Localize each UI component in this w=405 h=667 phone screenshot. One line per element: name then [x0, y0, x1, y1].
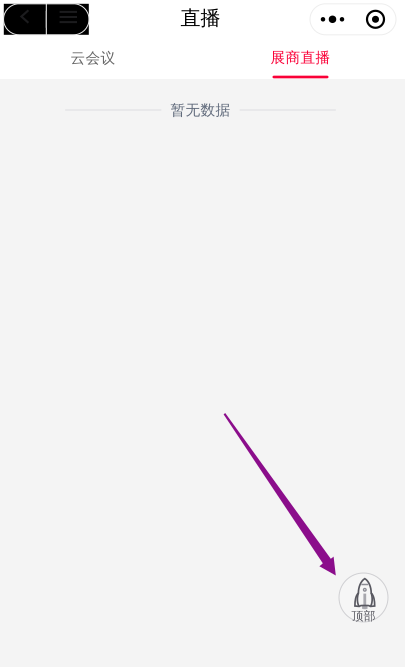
- button[interactable]: 回到顶部: [339, 573, 388, 622]
- staticText: 直播: [180, 6, 220, 30]
- staticText: 顶部: [351, 609, 375, 623]
- button[interactable]: 菜单: [47, 4, 89, 35]
- staticText: 暂无数据: [170, 101, 230, 119]
- staticText: 展商直播: [270, 48, 330, 66]
- button[interactable]: 展商直播: [244, 38, 356, 79]
- button[interactable]: 更多: [310, 4, 355, 35]
- button[interactable]: 返回: [4, 4, 46, 35]
- button[interactable]: 云会议: [42, 37, 144, 78]
- staticText: 云会议: [70, 49, 115, 67]
- button[interactable]: 关闭: [355, 4, 396, 35]
